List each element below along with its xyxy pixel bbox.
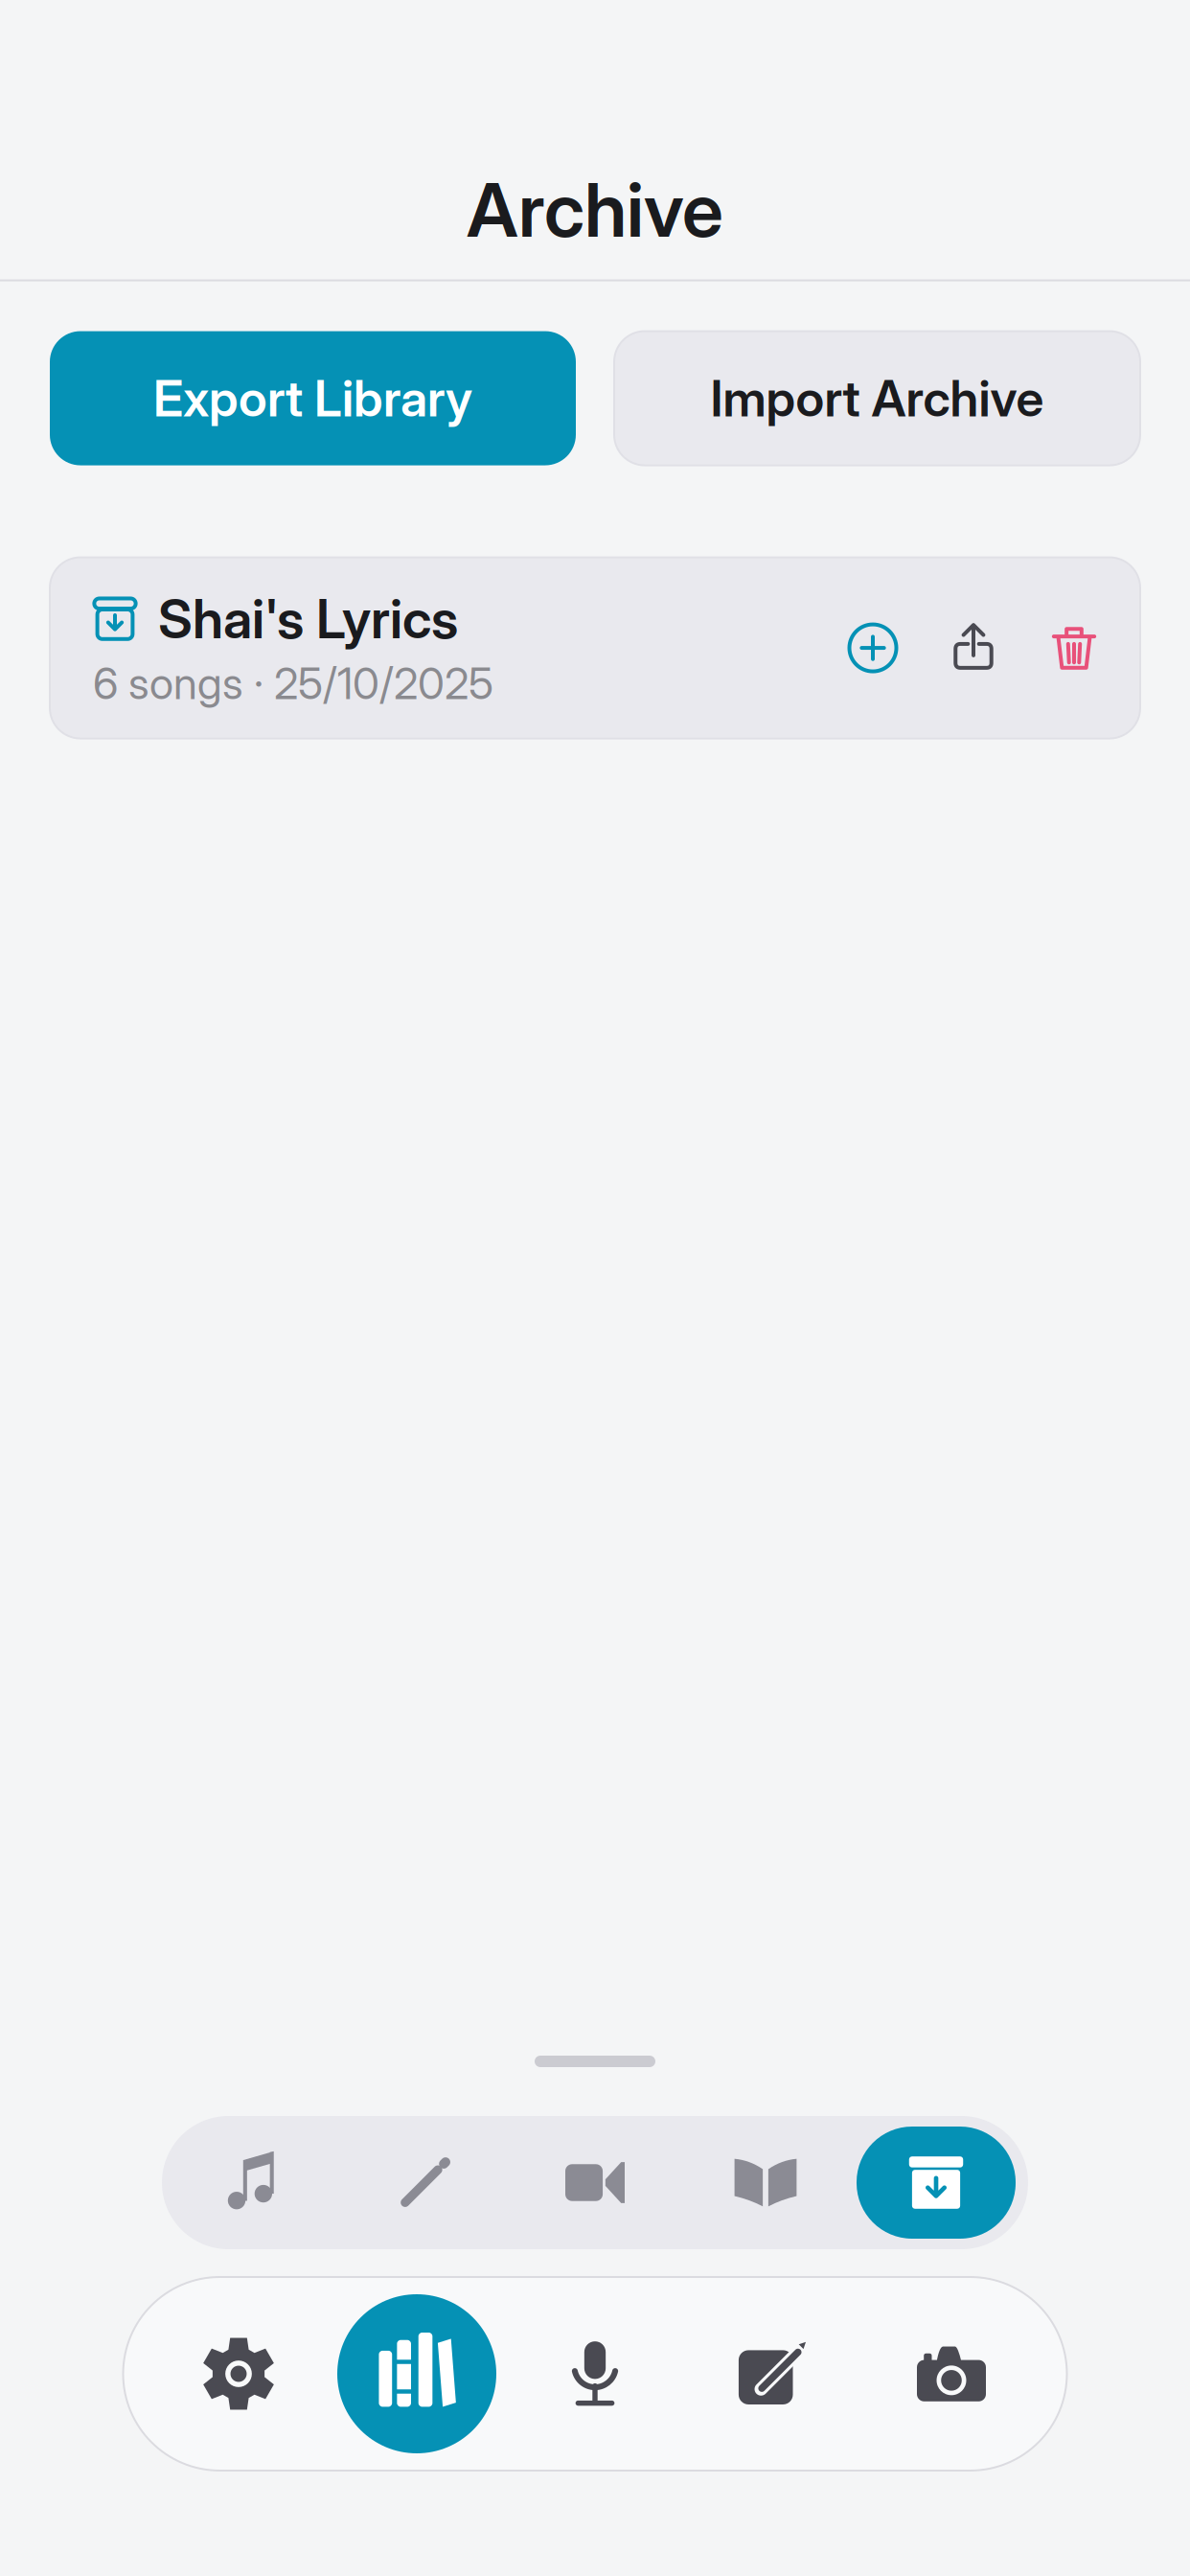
- button[interactable]: Video: [510, 2127, 680, 2239]
- button[interactable]: Camera: [862, 2288, 1041, 2460]
- button[interactable]: Shai's Lyrics: [93, 586, 493, 710]
- staticText: Archive: [467, 165, 723, 255]
- button[interactable]: Library: [328, 2288, 506, 2460]
- button[interactable]: Songs: [169, 2127, 339, 2239]
- button[interactable]: Settings: [149, 2288, 328, 2460]
- button[interactable]: Compose: [684, 2288, 862, 2460]
- button[interactable]: Add to library: [833, 608, 913, 688]
- button[interactable]: Import Archive: [614, 331, 1140, 465]
- staticText: 6 songs · 25/10/2025: [93, 657, 493, 710]
- button[interactable]: Export Library: [50, 331, 576, 465]
- staticText: Export Library: [153, 368, 472, 428]
- button[interactable]: Share: [933, 608, 1014, 688]
- button[interactable]: Book: [680, 2127, 851, 2239]
- button[interactable]: Record: [506, 2288, 684, 2460]
- staticText: Import Archive: [710, 368, 1044, 428]
- button[interactable]: Delete: [1034, 608, 1114, 688]
- button[interactable]: Archive: [851, 2127, 1021, 2239]
- button[interactable]: Edit: [339, 2127, 510, 2239]
- staticText: Shai's Lyrics: [158, 586, 458, 651]
